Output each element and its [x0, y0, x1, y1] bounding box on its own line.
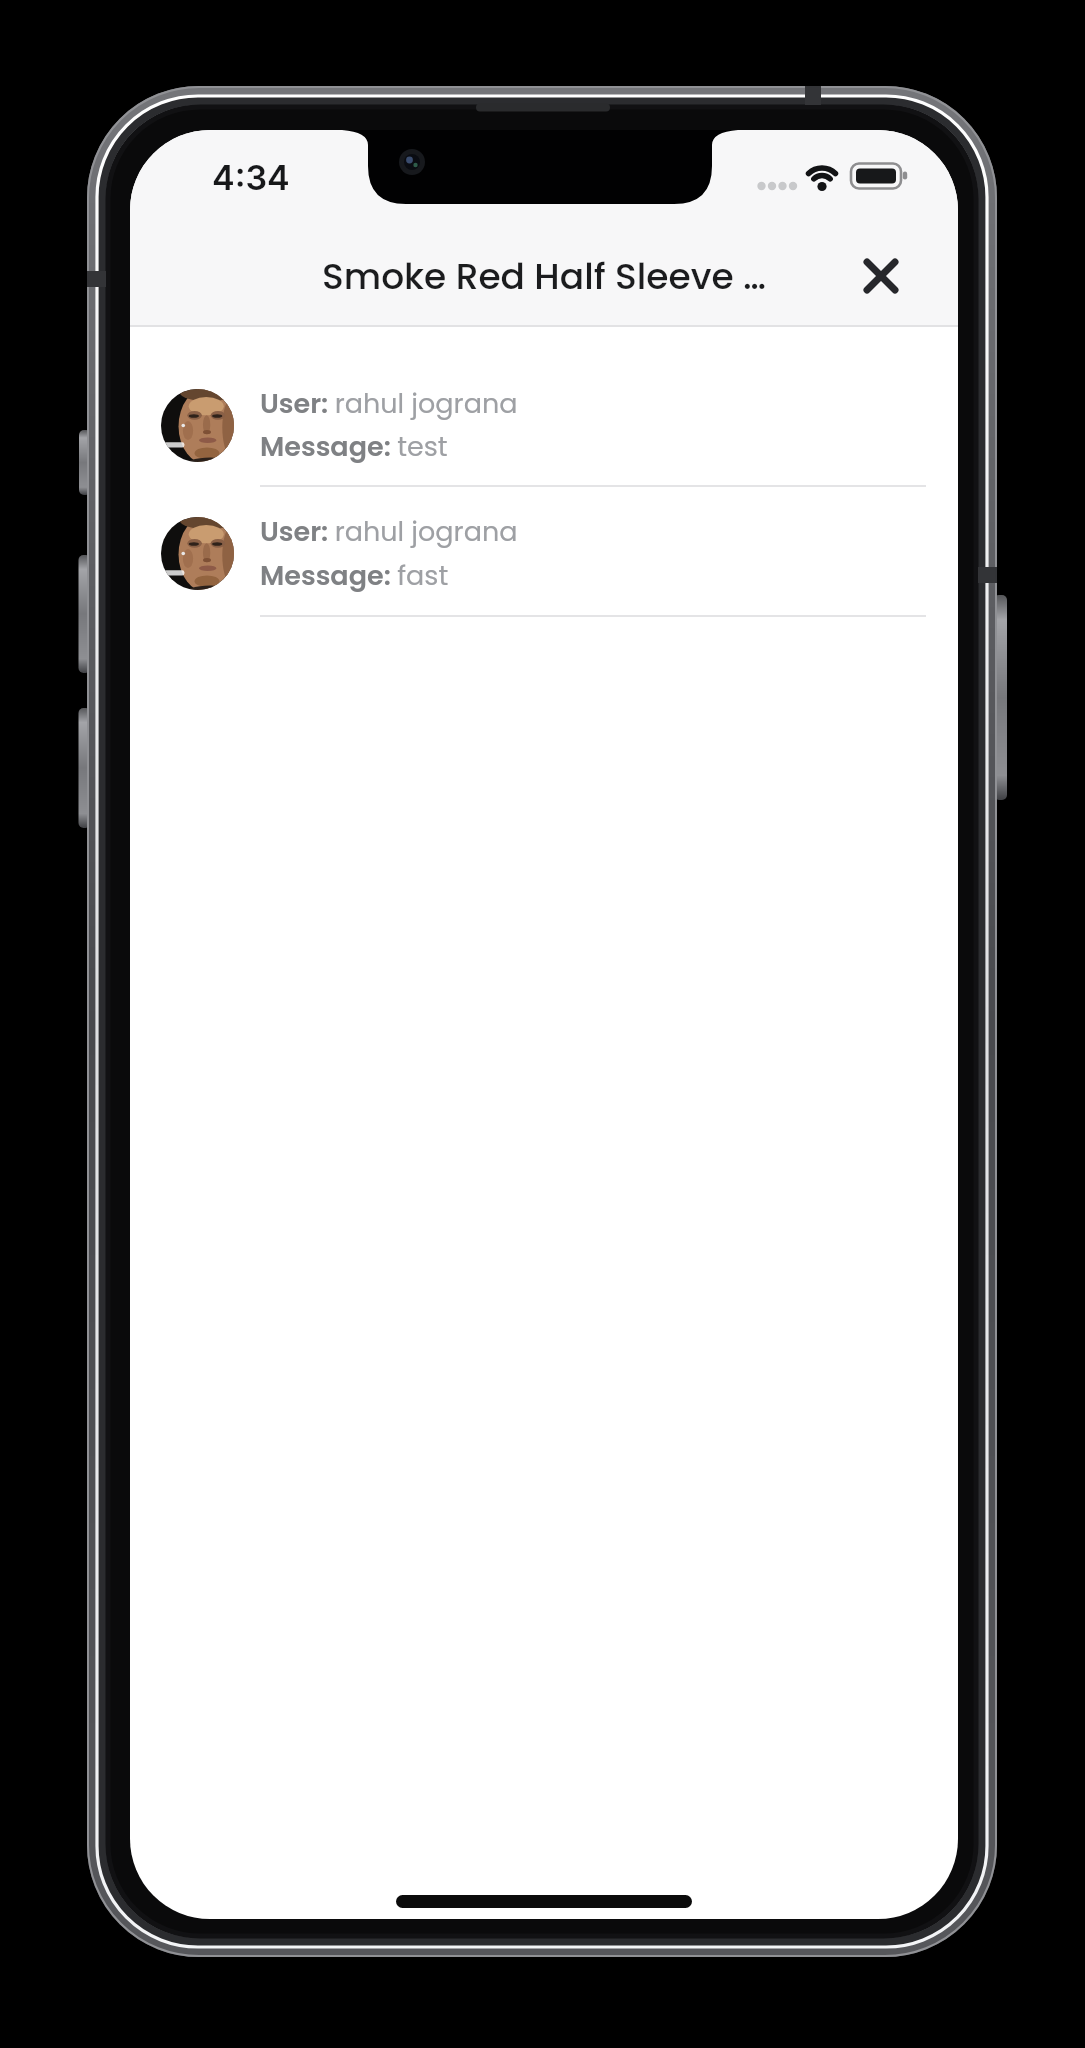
staticText: User: rahul jograna — [260, 385, 518, 423]
staticText: 4:34 — [212, 157, 290, 198]
button[interactable]: User: rahul jograna — [130, 505, 958, 627]
staticText: Smoke Red Half Sleeve … — [322, 251, 766, 301]
staticText: Message: test — [260, 428, 448, 466]
button[interactable] — [845, 240, 917, 312]
staticText: Message: fast — [260, 557, 449, 595]
button[interactable]: User: rahul jograna — [130, 377, 958, 499]
staticText: User: rahul jograna — [260, 513, 518, 551]
